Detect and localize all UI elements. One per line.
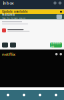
staticText: Tap to learn more (2, 17, 26, 20)
staticText: Featured (2, 13, 15, 16)
staticText: Update available (2, 10, 28, 13)
staticText: Inbox (2, 0, 13, 6)
staticText: Continue (50, 41, 61, 49)
staticText: netflix (2, 51, 15, 57)
